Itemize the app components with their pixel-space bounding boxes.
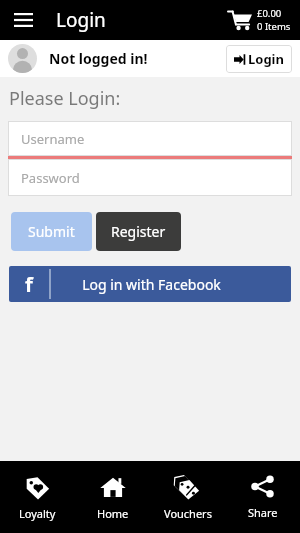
- staticText: f: [25, 271, 33, 298]
- staticText: £0.00: [257, 7, 282, 20]
- staticText: Not logged in!: [49, 49, 148, 68]
- button[interactable]: Username: [8, 121, 292, 156]
- button[interactable]: Cart: [228, 7, 291, 33]
- button[interactable]: Vouchers: [150, 461, 225, 533]
- button[interactable]: Loyalty: [0, 461, 75, 533]
- staticText: Home: [97, 506, 129, 521]
- staticText: Register: [111, 222, 166, 241]
- button[interactable]: Register: [96, 212, 181, 251]
- button[interactable]: Home: [75, 461, 150, 533]
- button[interactable]: Share: [225, 461, 300, 533]
- staticText: Share: [248, 505, 278, 520]
- staticText: Password: [21, 169, 80, 187]
- staticText: Loyalty: [19, 506, 56, 521]
- button[interactable]: Login: [226, 45, 292, 73]
- button[interactable]: Password: [8, 159, 292, 196]
- button[interactable]: Menu: [6, 3, 40, 37]
- button[interactable]: Submit: [11, 212, 92, 251]
- staticText: Login: [248, 50, 284, 68]
- staticText: Username: [21, 130, 85, 148]
- staticText: 0 Items: [257, 20, 291, 33]
- staticText: Log in with Facebook: [82, 275, 221, 294]
- staticText: Submit: [28, 222, 75, 241]
- staticText: Please Login:: [9, 86, 121, 111]
- button[interactable]: f: [9, 266, 291, 302]
- staticText: Vouchers: [164, 506, 212, 521]
- staticText: Login: [56, 7, 106, 33]
